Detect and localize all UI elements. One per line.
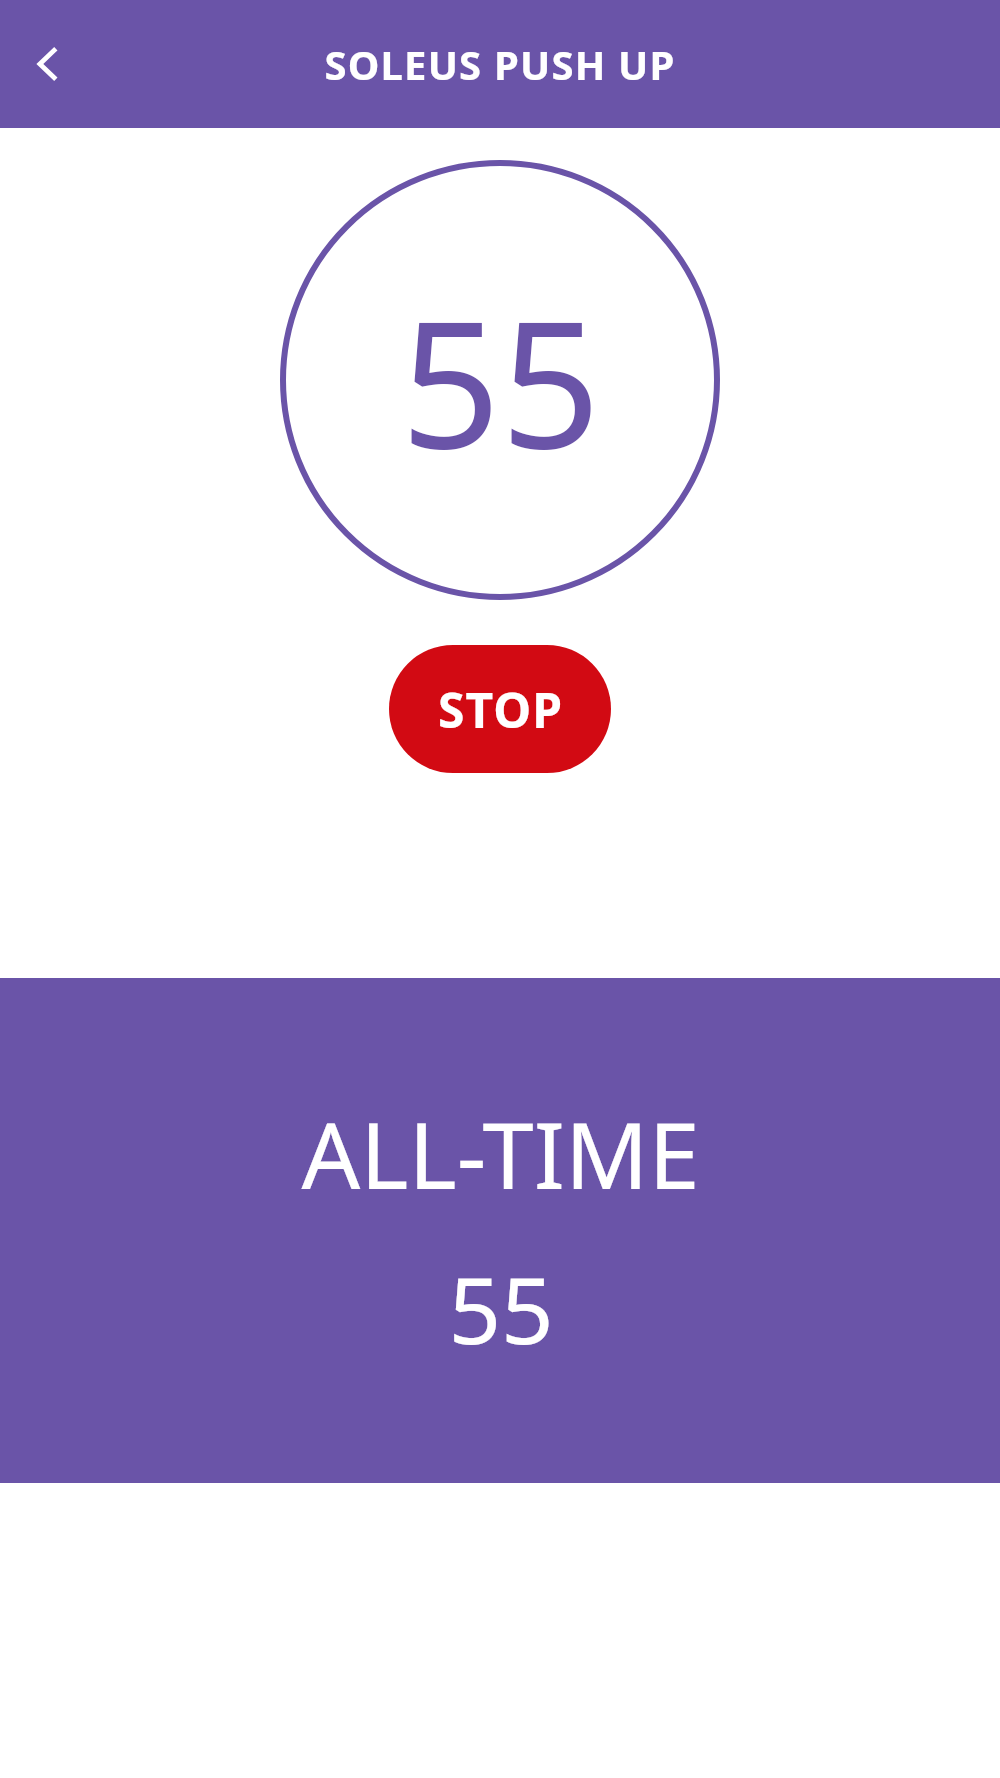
- staticText: 55: [400, 261, 601, 499]
- staticText: ALL-TIME: [301, 1091, 700, 1216]
- staticText: STOP: [438, 677, 563, 742]
- staticText: 55: [448, 1246, 554, 1371]
- button[interactable]: Back: [8, 24, 88, 104]
- button[interactable]: STOP: [389, 645, 611, 773]
- button[interactable]: 55: [280, 160, 720, 600]
- staticText: SOLEUS PUSH UP: [324, 37, 676, 91]
